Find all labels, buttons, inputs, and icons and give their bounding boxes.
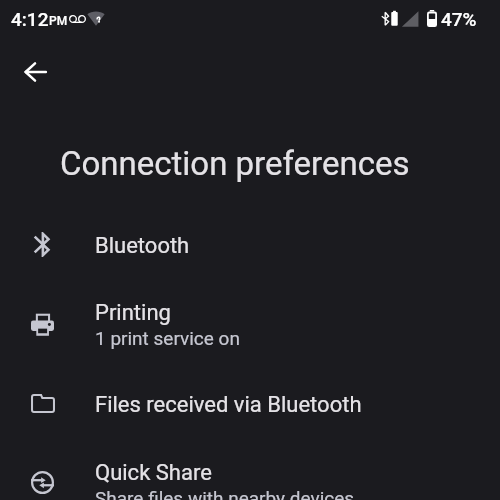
other: Wi-Fi, no internet xyxy=(87,11,105,26)
button[interactable]: Quick Share xyxy=(0,441,500,500)
button[interactable]: Files received via Bluetooth xyxy=(0,371,500,439)
staticText: PM xyxy=(49,14,68,28)
button[interactable]: Navigate up xyxy=(11,48,59,96)
button[interactable]: Printing xyxy=(0,281,500,367)
other: Mobile signal xyxy=(401,9,419,28)
staticText: 4:12 xyxy=(11,8,49,30)
staticText: Bluetooth xyxy=(95,233,190,259)
staticText: Files received via Bluetooth xyxy=(95,392,362,418)
staticText: Connection preferences xyxy=(60,144,410,183)
staticText: Share files with nearby devices xyxy=(95,487,355,500)
other: Bluetooth device battery xyxy=(381,9,400,27)
button[interactable]: Bluetooth xyxy=(0,212,500,280)
other: Voicemail xyxy=(69,15,86,23)
staticText: Quick Share xyxy=(95,460,212,486)
other: Battery 47 percent xyxy=(427,10,437,27)
staticText: Printing xyxy=(95,300,171,326)
staticText: 1 print service on xyxy=(95,327,240,349)
staticText: 47% xyxy=(441,8,477,30)
